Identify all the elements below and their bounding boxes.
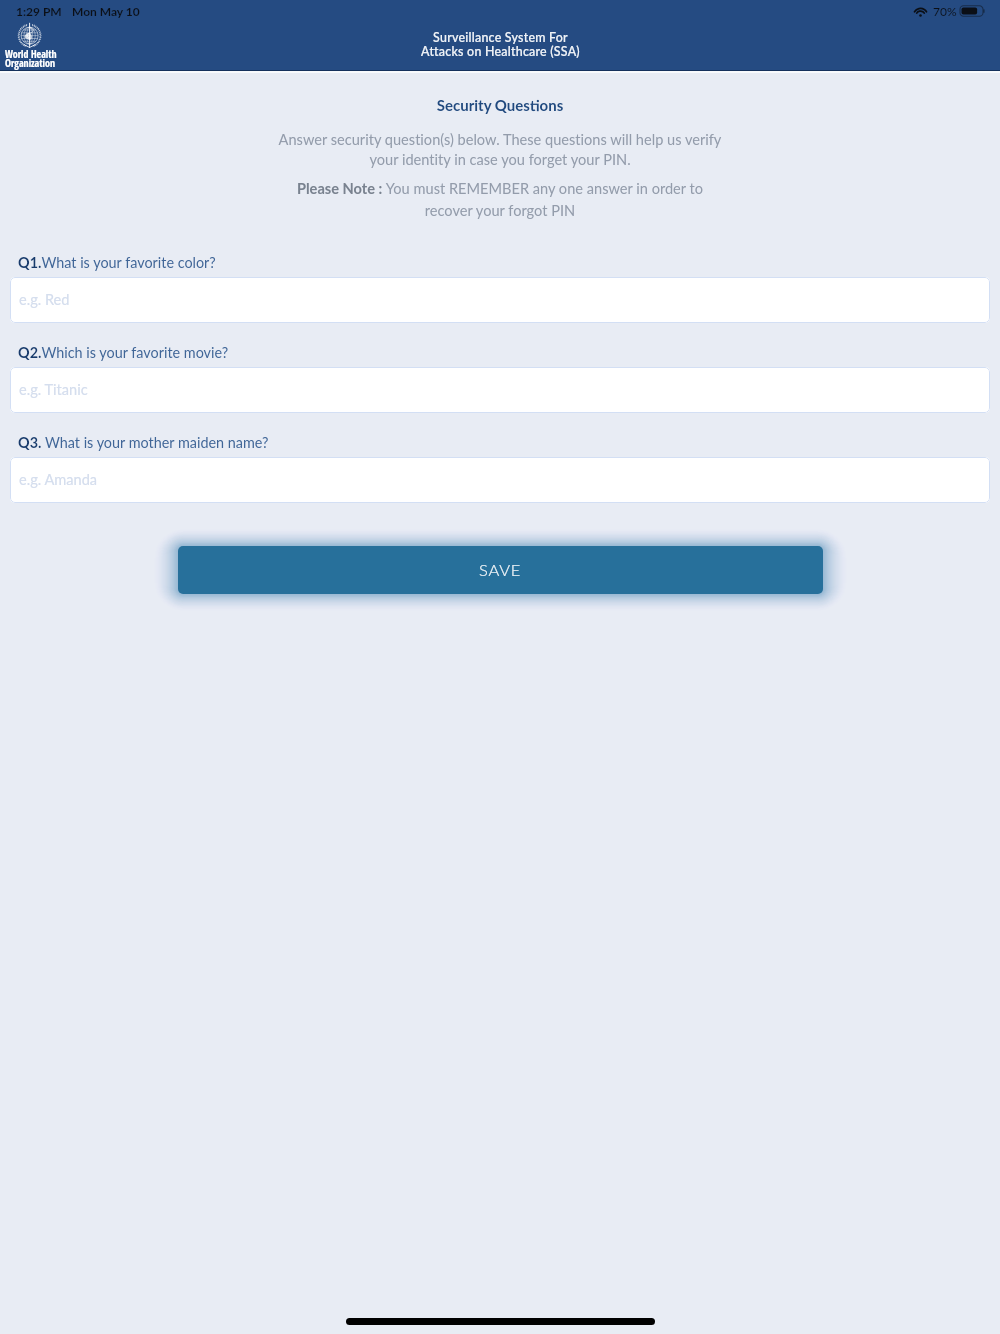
- staticText: World Health Organization: [5, 47, 57, 70]
- staticText: e.g. Amanda: [19, 471, 98, 489]
- staticText: Answer security question(s) below. These…: [0, 131, 1000, 168]
- staticText: 70%: [933, 4, 957, 18]
- staticText: SAVE: [479, 560, 522, 580]
- staticText: Q2.Which is your favorite movie?: [18, 344, 229, 361]
- button[interactable]: e.g. Amanda: [10, 457, 990, 503]
- staticText: Surveillance System For Attacks on Healt…: [421, 30, 580, 58]
- button[interactable]: SAVE: [178, 546, 823, 594]
- staticText: Please Note : You must REMEMBER any one …: [0, 180, 1000, 219]
- staticText: e.g. Titanic: [19, 381, 88, 399]
- button[interactable]: e.g. Red: [10, 277, 990, 323]
- other: Battery 70 percent: [960, 5, 985, 17]
- other: Wi-Fi: [913, 6, 928, 17]
- staticText: Mon May 10: [72, 4, 140, 18]
- staticText: Security Questions: [0, 96, 1000, 114]
- staticText: e.g. Red: [19, 291, 70, 309]
- staticText: Q3. What is your mother maiden name?: [18, 434, 269, 451]
- button[interactable]: e.g. Titanic: [10, 367, 990, 413]
- staticText: 1:29 PM: [16, 4, 62, 18]
- staticText: Q1.What is your favorite color?: [18, 254, 216, 271]
